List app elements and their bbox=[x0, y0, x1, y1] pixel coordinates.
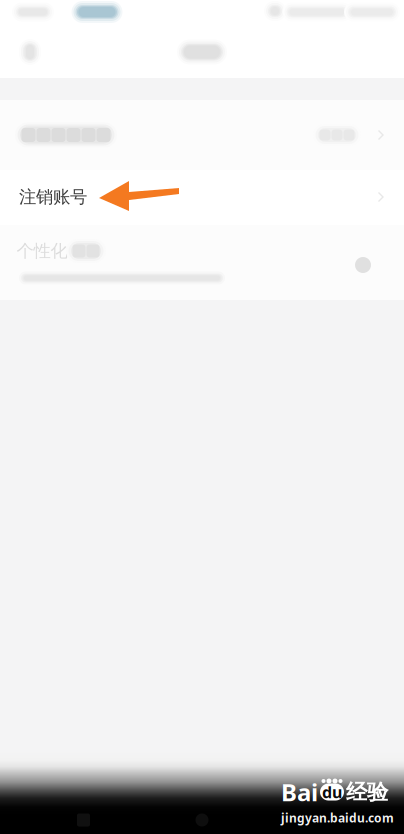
staticText: Bai bbox=[281, 776, 318, 808]
staticText: 个性化 bbox=[16, 240, 67, 262]
button[interactable]: Back bbox=[48, 800, 118, 834]
staticText: du bbox=[322, 781, 342, 803]
staticText: 注销账号 bbox=[19, 186, 87, 208]
button[interactable]: 个性化 bbox=[0, 225, 404, 300]
button[interactable]: Home bbox=[167, 800, 237, 834]
staticText: jingyan.baidu.com bbox=[281, 810, 394, 826]
staticText: 经验 bbox=[346, 779, 388, 805]
button[interactable]: 注销账号 bbox=[0, 170, 404, 225]
button[interactable]: Back bbox=[10, 32, 50, 72]
button[interactable] bbox=[0, 100, 404, 170]
